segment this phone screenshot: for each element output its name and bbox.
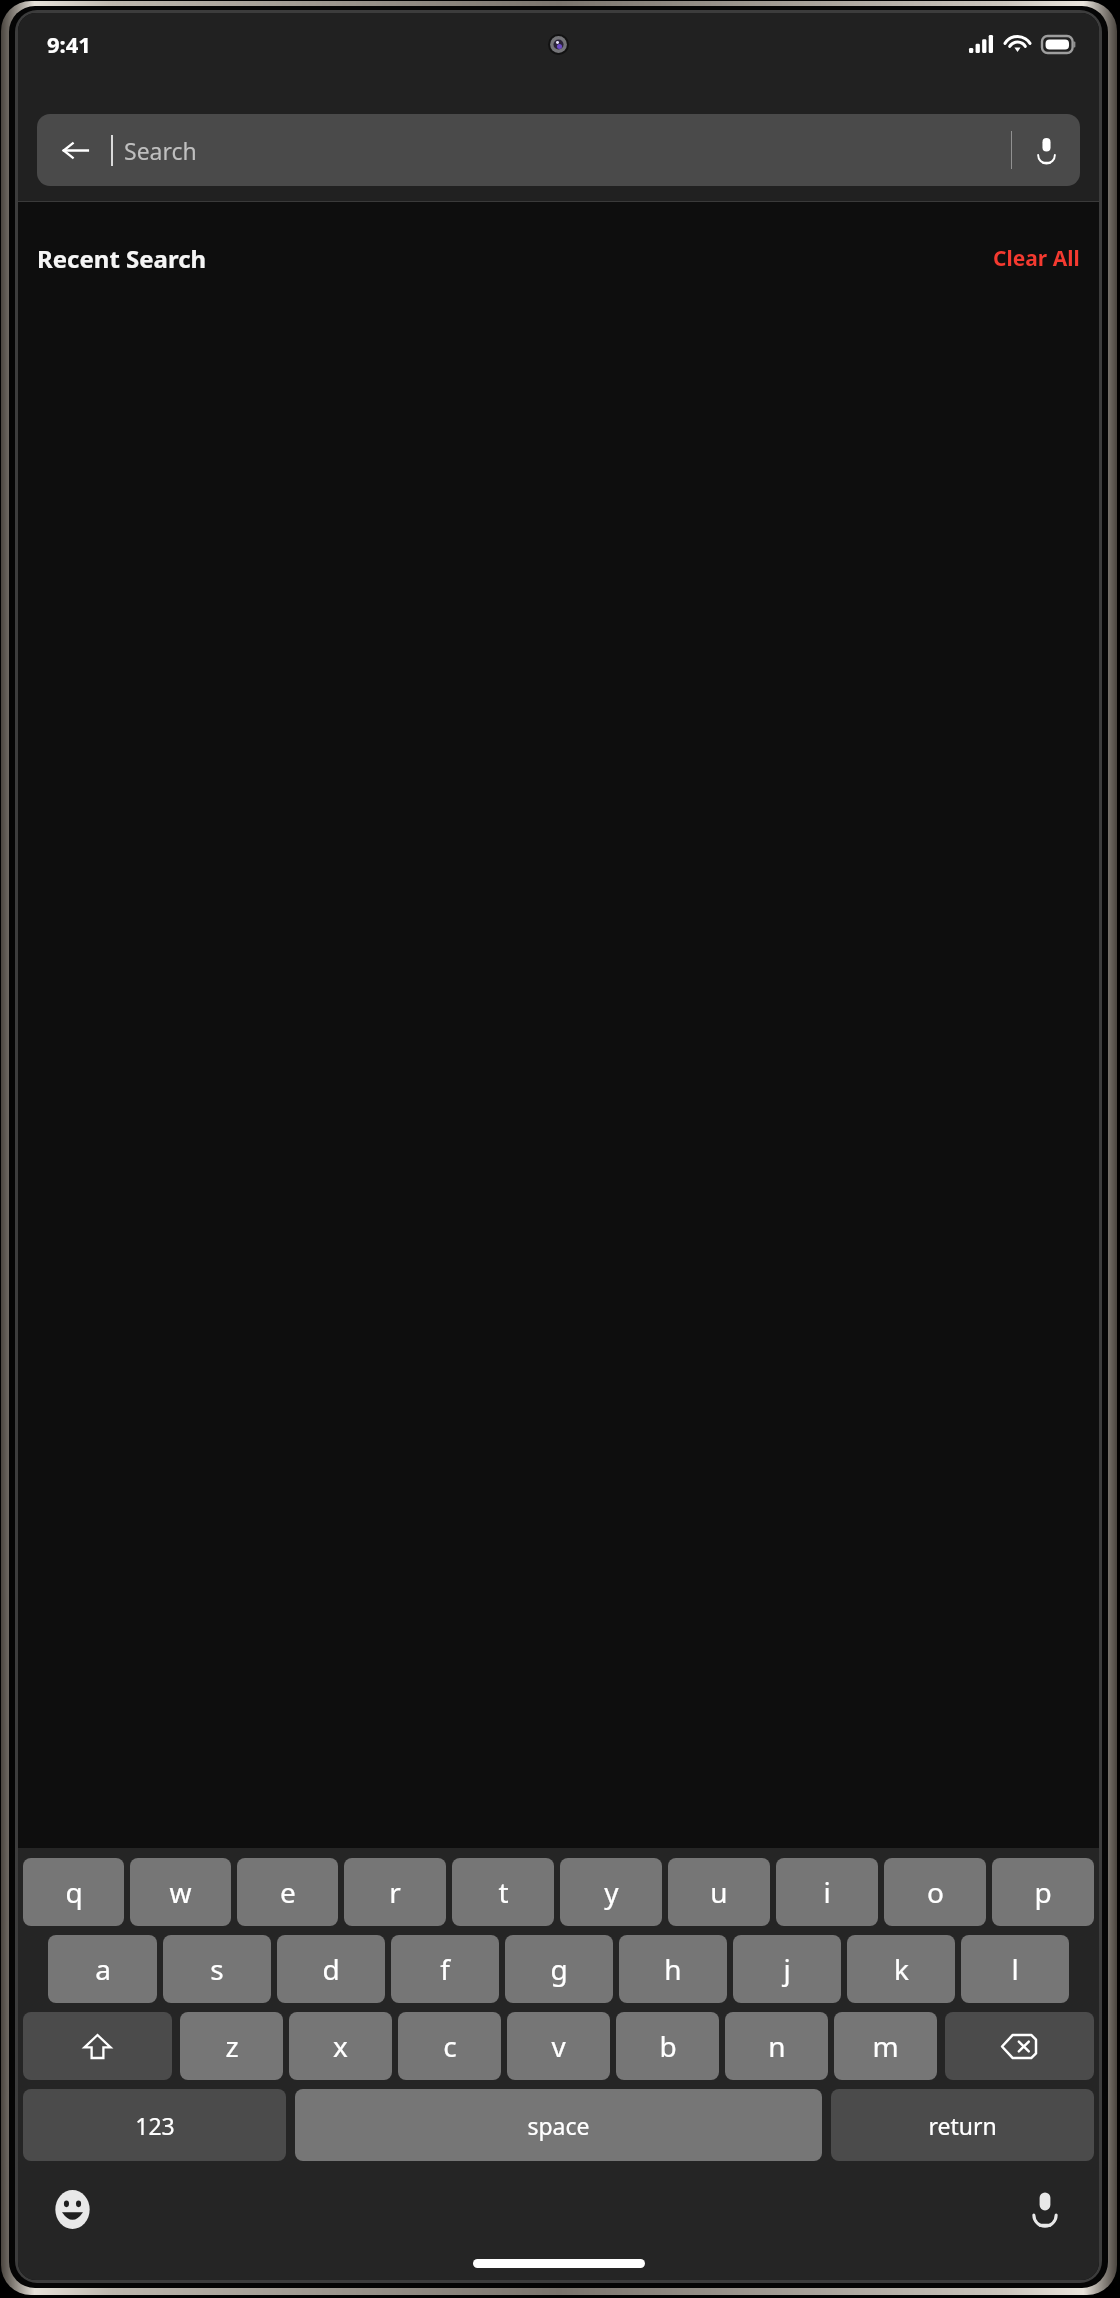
button[interactable]: h [619,1935,727,2003]
staticText: s [210,1950,224,1988]
button[interactable]: 123 [23,2089,286,2161]
staticText: f [440,1950,450,1988]
staticText: d [322,1950,340,1988]
button[interactable]: Clear All [993,244,1080,273]
staticText: u [710,1873,728,1911]
button[interactable]: Voice search [1023,127,1069,173]
button[interactable]: t [452,1858,554,1926]
button[interactable]: space [295,2089,822,2161]
button[interactable]: r [344,1858,446,1926]
staticText: x [333,2027,348,2065]
button[interactable]: z [180,2012,283,2080]
button[interactable]: a [48,1935,157,2003]
button[interactable]: Voice input [1016,2180,1074,2238]
staticText: l [1011,1950,1019,1988]
staticText: Clear All [993,244,1080,273]
staticText: p [1034,1873,1052,1911]
staticText: Recent Search [37,242,207,275]
button[interactable]: m [834,2012,937,2080]
staticText: r [389,1873,401,1911]
button[interactable]: k [847,1935,955,2003]
staticText: m [872,2027,899,2065]
staticText: g [550,1950,568,1988]
button[interactable]: c [398,2012,501,2080]
staticText: y [604,1873,619,1911]
staticText: space [527,2110,590,2141]
staticText: z [225,2027,239,2065]
staticText: return [928,2110,997,2141]
staticText: 9:41 [47,29,91,59]
button[interactable]: Backspace [945,2012,1094,2080]
button[interactable]: return [831,2089,1094,2161]
button[interactable]: q [23,1858,124,1926]
staticText: c [443,2027,457,2065]
button[interactable]: y [560,1858,662,1926]
button[interactable]: d [277,1935,385,2003]
staticText: Search [124,135,1011,166]
staticText: o [927,1873,944,1911]
button[interactable]: i [776,1858,878,1926]
staticText: e [280,1873,296,1911]
button[interactable]: f [391,1935,499,2003]
button[interactable]: o [884,1858,986,1926]
staticText: j [783,1950,791,1988]
button[interactable]: v [507,2012,610,2080]
button[interactable]: Shift [23,2012,172,2080]
button[interactable]: u [668,1858,770,1926]
staticText: t [498,1873,509,1911]
staticText: n [768,2027,786,2065]
button[interactable]: p [992,1858,1094,1926]
button[interactable]: b [616,2012,719,2080]
staticText: 123 [135,2110,175,2141]
button[interactable]: Emoji [43,2180,101,2238]
staticText: a [95,1950,111,1988]
button[interactable]: Back [51,126,99,174]
staticText: b [659,2027,677,2065]
staticText: w [169,1873,192,1911]
button[interactable]: x [289,2012,392,2080]
button[interactable]: Back [37,114,1080,186]
staticText: v [551,2027,566,2065]
button[interactable]: l [961,1935,1069,2003]
staticText: q [65,1873,83,1911]
button[interactable]: j [733,1935,841,2003]
staticText: k [894,1950,909,1988]
button[interactable]: n [725,2012,828,2080]
button[interactable]: g [505,1935,613,2003]
button[interactable]: e [237,1858,338,1926]
button[interactable]: s [163,1935,271,2003]
button[interactable]: w [130,1858,231,1926]
staticText: h [664,1950,682,1988]
staticText: i [823,1873,831,1911]
